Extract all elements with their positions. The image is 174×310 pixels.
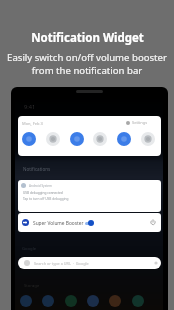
button[interactable]: Quick setting [70,132,84,146]
button[interactable]: App [20,295,32,307]
staticText: Android System [29,184,52,188]
button[interactable]: Settings [126,120,148,125]
button[interactable]: Power [150,219,156,225]
button[interactable]: Quick setting [117,132,131,146]
button[interactable]: Quick setting [93,132,107,146]
button[interactable]: App [65,295,77,307]
staticText: Google [22,246,37,252]
other: Voice search [154,261,158,265]
staticText: USB debugging connected [23,191,63,195]
button[interactable]: App [109,295,121,307]
button[interactable]: Android System [18,180,161,212]
staticText: Super Volume Booster [33,220,84,227]
staticText: 9:41 [24,103,36,111]
staticText: Easily switch on/off volume booster from… [7,51,167,77]
staticText: Tap to turn off USB debugging [23,197,69,201]
button[interactable]: Quick setting [141,132,155,146]
staticText: Search or type a URL · Google [34,261,89,266]
staticText: Storage [24,283,40,289]
button[interactable]: Search or type a URL · Google [18,257,161,269]
staticText: Mon, Feb 3 [22,121,43,126]
staticText: Settings [132,120,148,125]
staticText: Notification Widget [31,30,144,46]
staticText: Notifications [23,166,51,172]
button[interactable]: Quick setting [22,132,36,146]
button[interactable]: App [42,295,54,307]
button[interactable]: Super Volume Booster [18,213,161,232]
button[interactable]: App [132,295,144,307]
button[interactable]: App [87,295,99,307]
button[interactable]: Quick setting [46,132,60,146]
